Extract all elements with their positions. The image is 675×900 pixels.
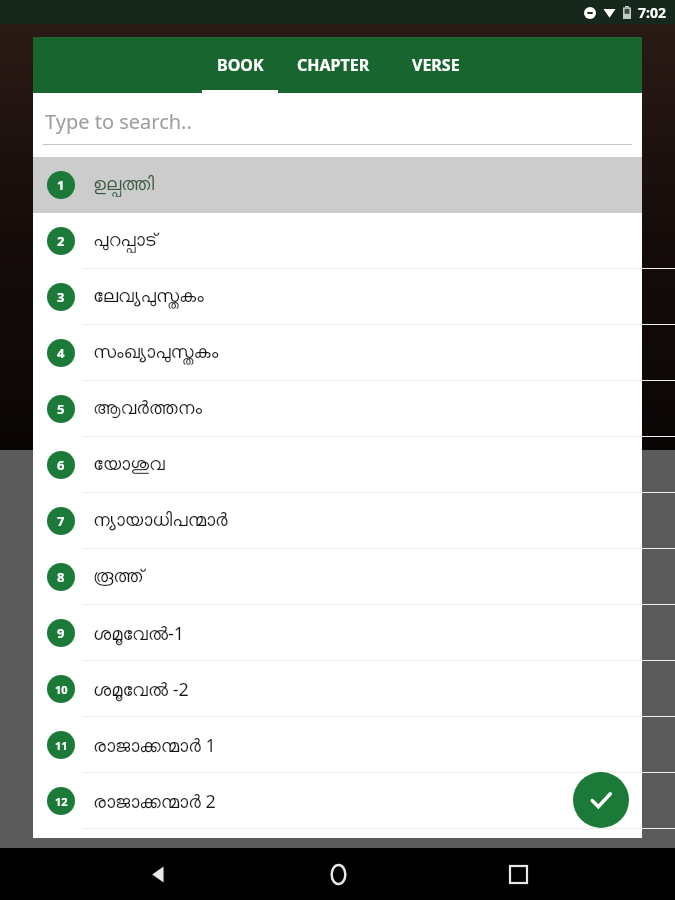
staticText: BOOK bbox=[217, 54, 264, 76]
staticText: രാജാക്കന്മാർ 1 bbox=[93, 733, 216, 758]
staticText: രാജാക്കന്മാർ 2 bbox=[93, 789, 216, 814]
button[interactable]: Type to search.. bbox=[33, 93, 642, 157]
staticText: 10 bbox=[55, 682, 68, 697]
staticText: ന്യായാധിപന്മാർ bbox=[93, 512, 228, 530]
staticText: 2 bbox=[57, 232, 65, 250]
staticText: 11 bbox=[55, 738, 68, 753]
button[interactable]: Home bbox=[314, 850, 362, 898]
staticText: 4 bbox=[57, 344, 65, 362]
button[interactable]: Back bbox=[133, 850, 181, 898]
button[interactable]: 2 bbox=[33, 213, 642, 269]
staticText: യോശുവ bbox=[93, 456, 165, 474]
button[interactable]: 6 bbox=[33, 437, 642, 493]
staticText: ശമൂവേൽ-1 bbox=[93, 621, 185, 646]
staticText: സംഖ്യാപുസ്തകം bbox=[93, 344, 219, 362]
button[interactable]: 1 bbox=[33, 157, 642, 213]
staticText: 7 bbox=[57, 512, 65, 530]
staticText: 6 bbox=[57, 456, 65, 474]
staticText: Type to search.. bbox=[45, 108, 192, 135]
button[interactable]: Recent apps bbox=[494, 850, 542, 898]
staticText: ആവർത്തനം bbox=[93, 400, 202, 418]
staticText: ഉല്പത്തി bbox=[93, 176, 155, 194]
staticText: ശമൂവേൽ -2 bbox=[93, 677, 189, 702]
button[interactable]: BOOK bbox=[202, 37, 278, 93]
staticText: 12 bbox=[55, 794, 68, 809]
staticText: 9 bbox=[57, 624, 65, 642]
staticText: 8 bbox=[57, 568, 65, 586]
button[interactable]: 3 bbox=[33, 269, 642, 325]
button[interactable]: 4 bbox=[33, 325, 642, 381]
button[interactable]: 8 bbox=[33, 549, 642, 605]
staticText: VERSE bbox=[412, 54, 460, 76]
staticText: 5 bbox=[57, 400, 65, 418]
staticText: ലേവ്യപുസ്തകം bbox=[93, 288, 204, 306]
button[interactable]: VERSE bbox=[388, 37, 484, 93]
button[interactable]: 7 bbox=[33, 493, 642, 549]
button[interactable]: 10 bbox=[33, 661, 642, 717]
button[interactable]: 12 bbox=[33, 773, 642, 829]
staticText: CHAPTER bbox=[297, 54, 370, 76]
staticText: രൂത്ത് bbox=[93, 568, 144, 586]
button[interactable]: Confirm selection bbox=[573, 772, 629, 828]
staticText: 3 bbox=[57, 288, 65, 306]
staticText: 1 bbox=[57, 176, 65, 194]
button[interactable]: CHAPTER bbox=[278, 37, 388, 93]
button[interactable]: 11 bbox=[33, 717, 642, 773]
button[interactable]: 9 bbox=[33, 605, 642, 661]
staticText: 7:02 bbox=[638, 3, 666, 22]
staticText: പുറപ്പാട് bbox=[93, 232, 158, 250]
button[interactable]: 5 bbox=[33, 381, 642, 437]
